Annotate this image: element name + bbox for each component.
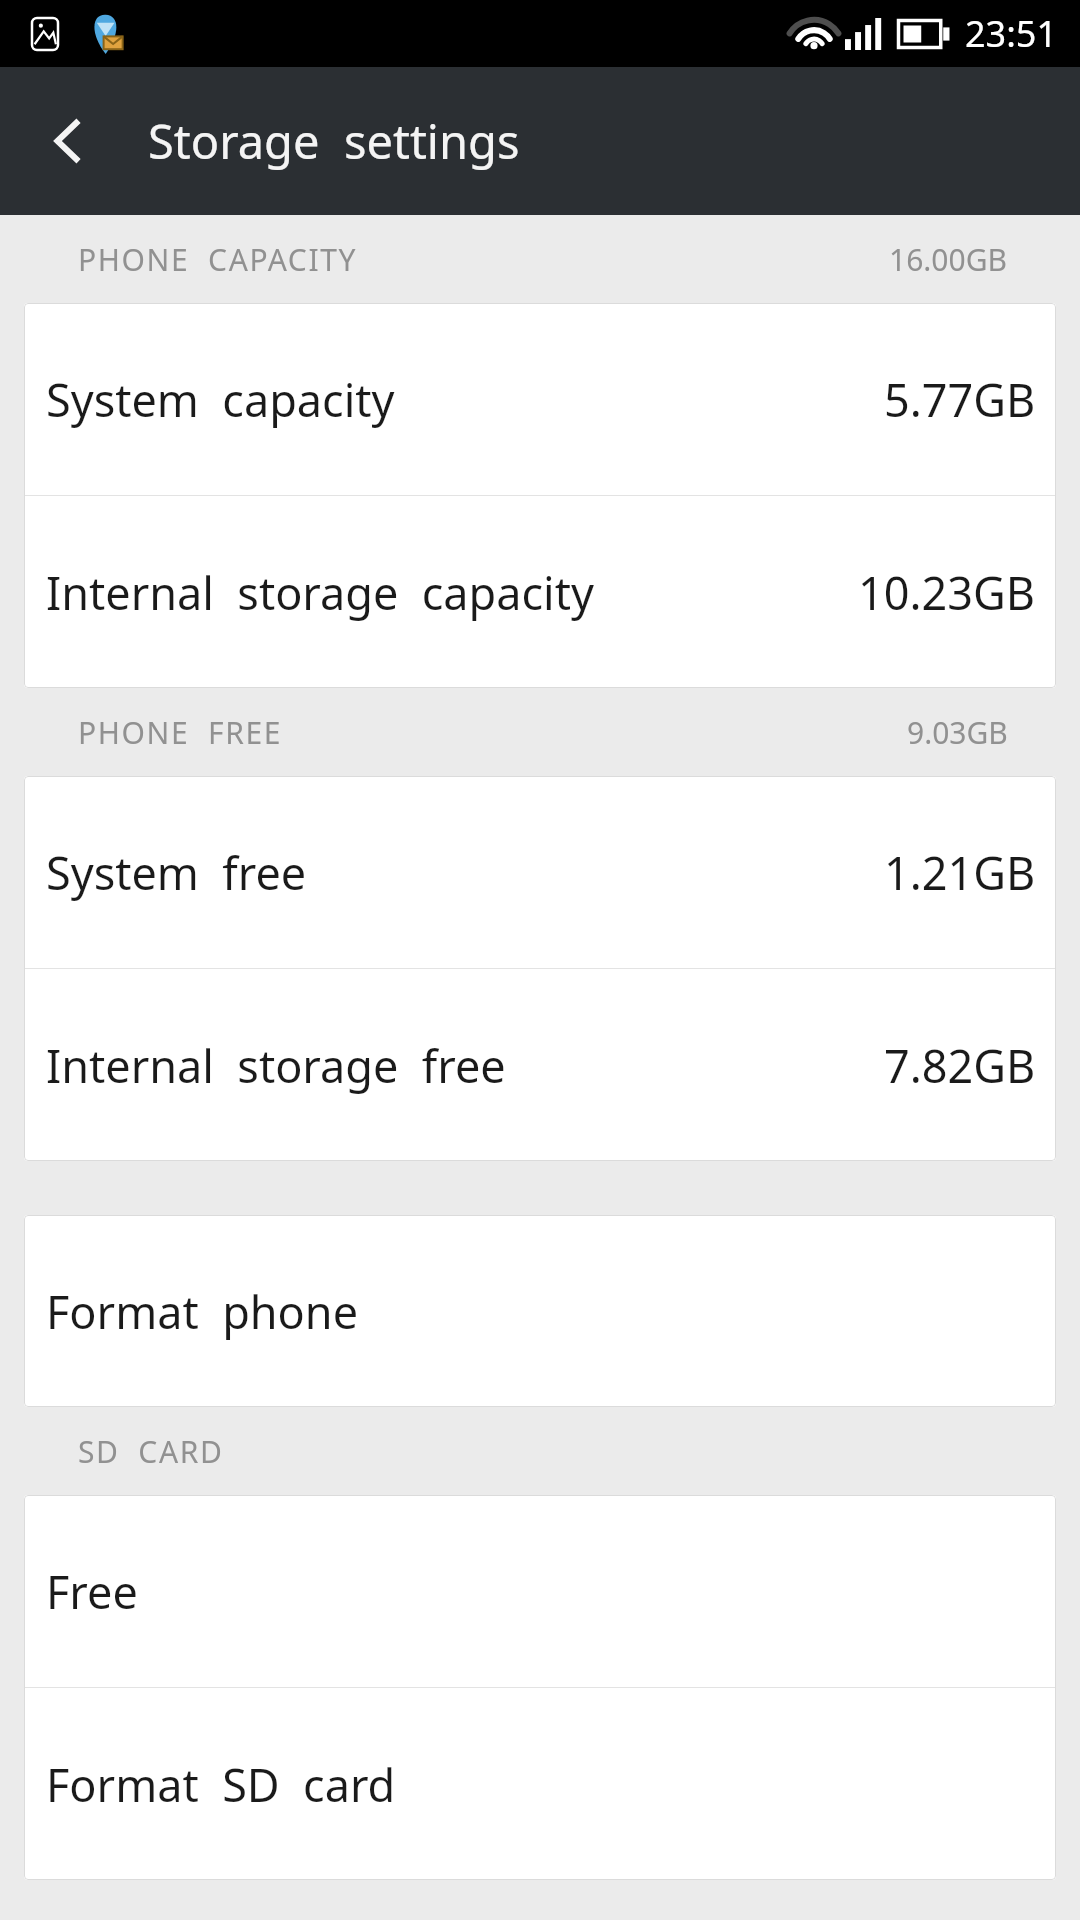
staticText: SD CARD — [78, 1431, 224, 1472]
staticText: Format phone — [46, 1281, 1036, 1342]
staticText: 10.23GB — [858, 562, 1036, 623]
staticText: Internal storage free — [46, 1035, 884, 1096]
staticText: 5.77GB — [884, 369, 1036, 430]
staticText: PHONE CAPACITY — [78, 239, 358, 280]
button[interactable]: Internal storage free — [24, 969, 1056, 1161]
button[interactable]: Free — [24, 1495, 1056, 1687]
staticText: System capacity — [46, 369, 884, 430]
staticText: Free — [46, 1561, 1036, 1622]
staticText: 7.82GB — [884, 1035, 1036, 1096]
staticText: 9.03GB — [907, 712, 1008, 753]
staticText: Storage settings — [148, 109, 520, 173]
staticText: Format SD card — [46, 1754, 1036, 1815]
staticText: 1.21GB — [884, 842, 1036, 903]
button[interactable]: Back — [26, 99, 110, 183]
button[interactable]: System free — [24, 776, 1056, 968]
button[interactable]: System capacity — [24, 303, 1056, 495]
button[interactable]: Format phone — [24, 1215, 1056, 1407]
staticText: PHONE FREE — [78, 712, 283, 753]
staticText: Internal storage capacity — [46, 562, 858, 623]
staticText: 23:51 — [965, 9, 1058, 58]
button[interactable]: Internal storage capacity — [24, 496, 1056, 688]
button[interactable]: Format SD card — [24, 1688, 1056, 1880]
staticText: System free — [46, 842, 884, 903]
staticText: 16.00GB — [889, 239, 1008, 280]
